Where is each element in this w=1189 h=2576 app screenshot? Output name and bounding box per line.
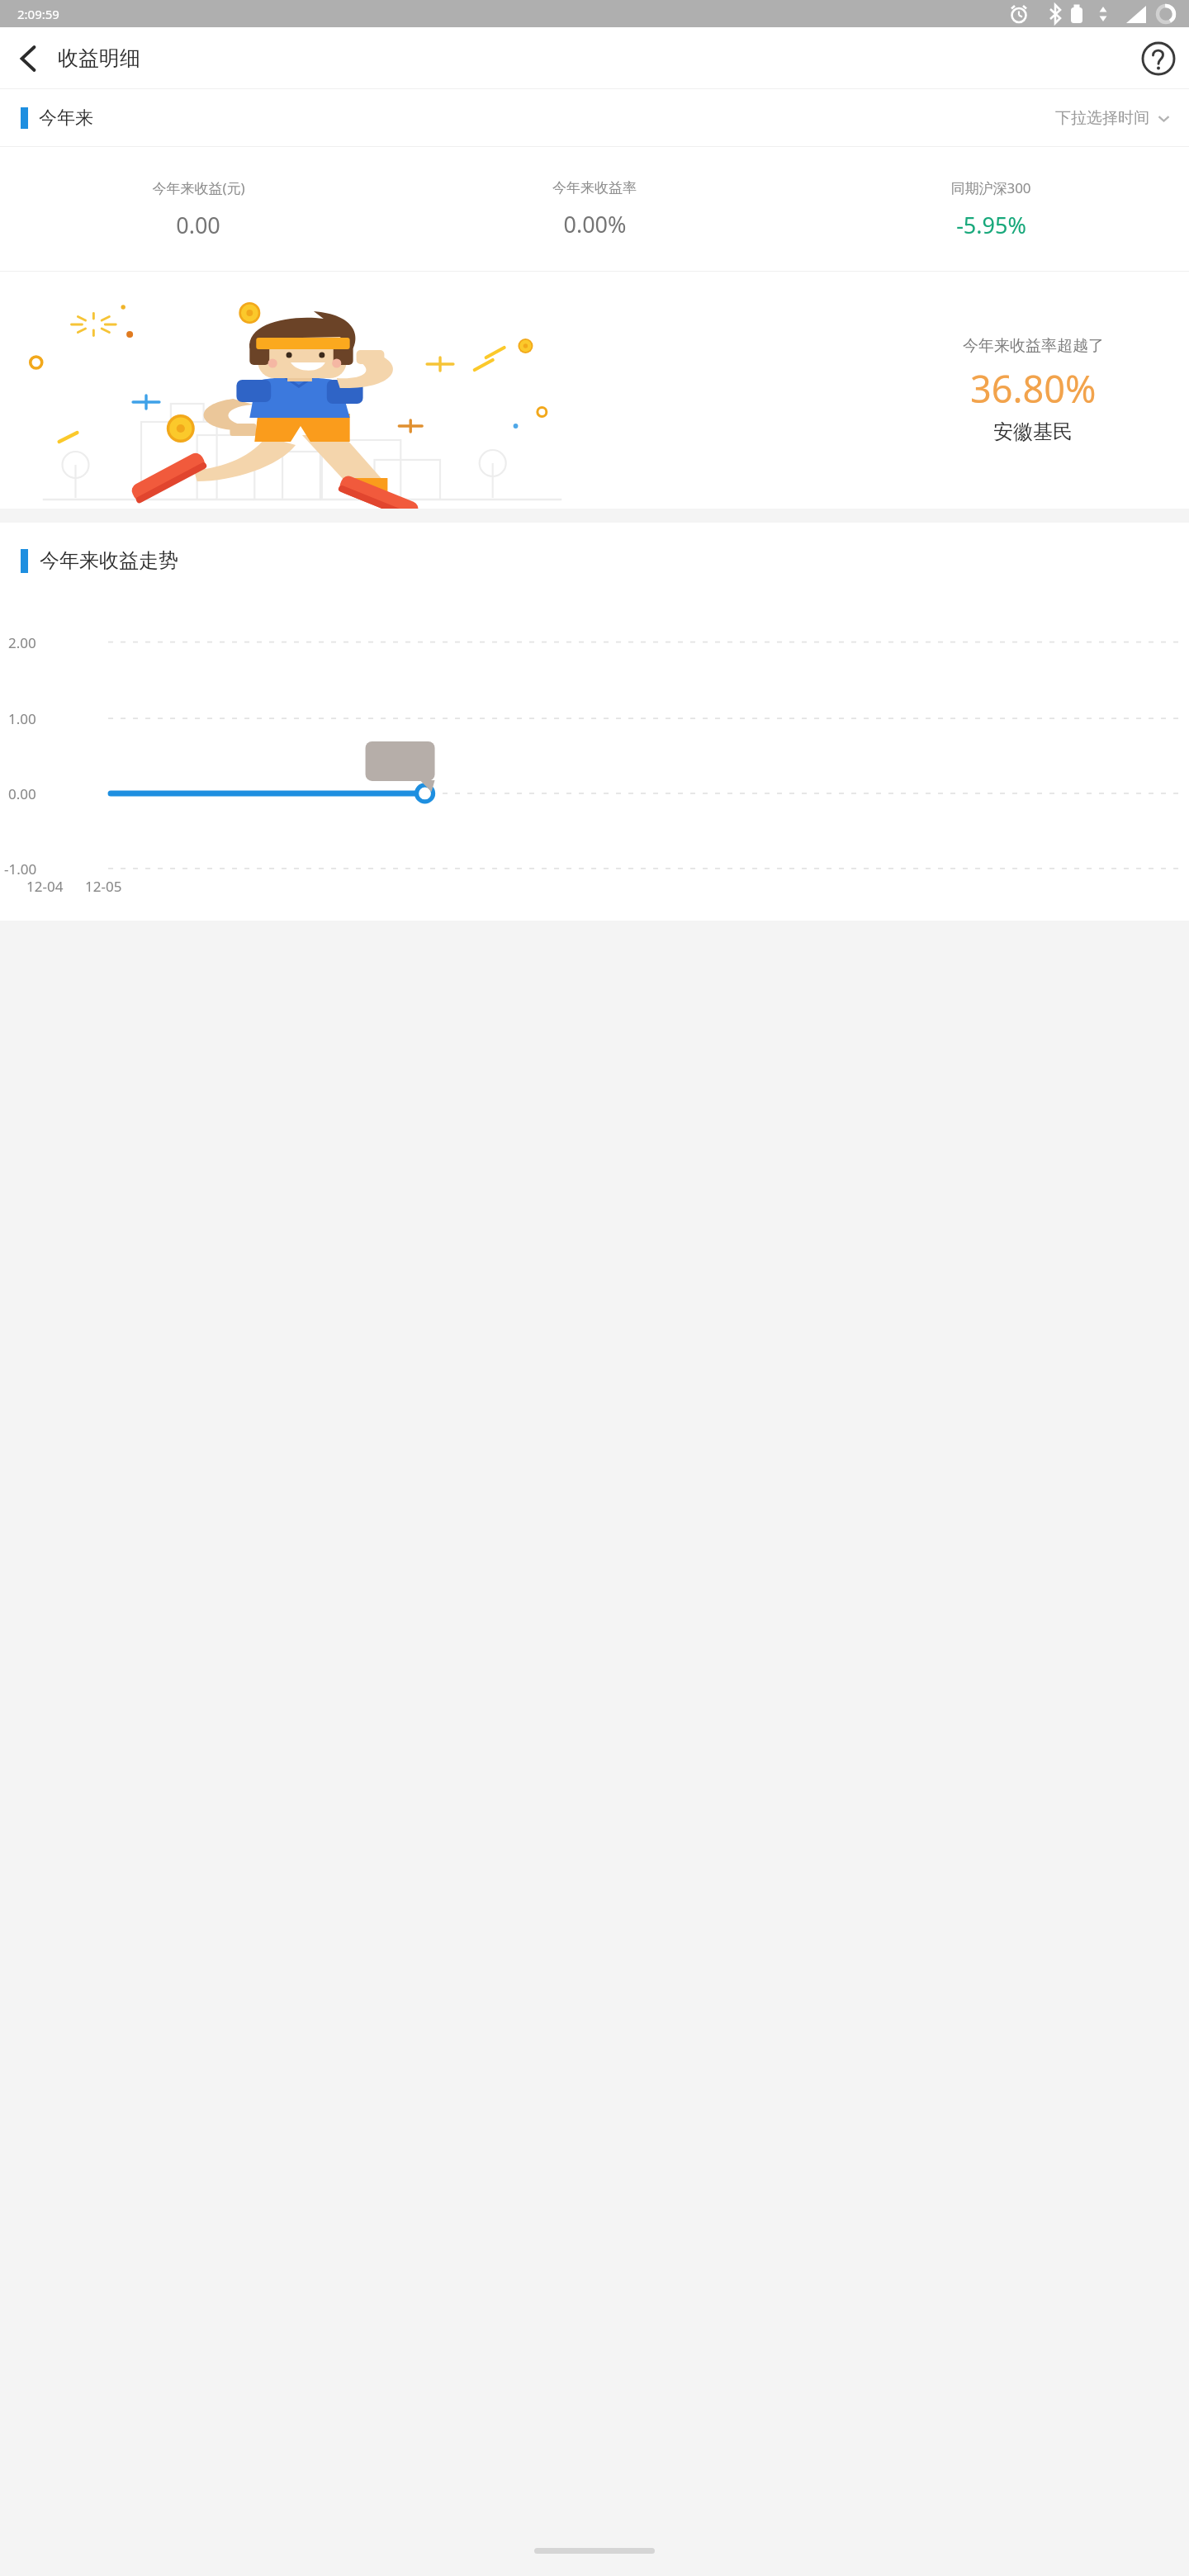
staticText: 1.00 [8,709,36,728]
staticText: 36.80% [970,363,1097,414]
staticText: 今年来收益率超越了 [963,336,1104,356]
staticText: 今年来收益走势 [40,548,178,573]
staticText: -5.95% [956,210,1026,240]
staticText: 收益明细 [58,45,140,71]
staticText: 今年来收益率 [552,179,637,197]
staticText: 2:09:59 [17,6,59,22]
button[interactable]: 今年来收益走势 [21,548,178,573]
staticText: 12-04 [26,877,64,896]
staticText: 2.00 [8,633,36,652]
button[interactable]: Help [1135,35,1182,83]
staticText: 0.00% [563,209,627,239]
button[interactable]: Back [4,35,52,83]
staticText: 下拉选择时间 [1055,108,1149,128]
button[interactable]: 下拉选择时间 [1052,102,1174,135]
staticText: 0.00 [8,784,36,803]
button[interactable]: 今年来 [21,107,93,130]
staticText: 0.00 [176,210,220,240]
button[interactable]: 今年来收益率 [396,179,793,239]
staticText: 今年来收益(元) [152,178,245,197]
button[interactable]: 同期沪深300 [793,178,1189,240]
button[interactable]: 今年来收益(元) [0,178,396,240]
staticText: 安徽基民 [993,419,1073,444]
staticText: 12-05 [85,877,122,896]
staticText: 同期沪深300 [950,178,1031,197]
staticText: -1.00 [4,859,37,878]
staticText: 今年来 [39,107,93,130]
